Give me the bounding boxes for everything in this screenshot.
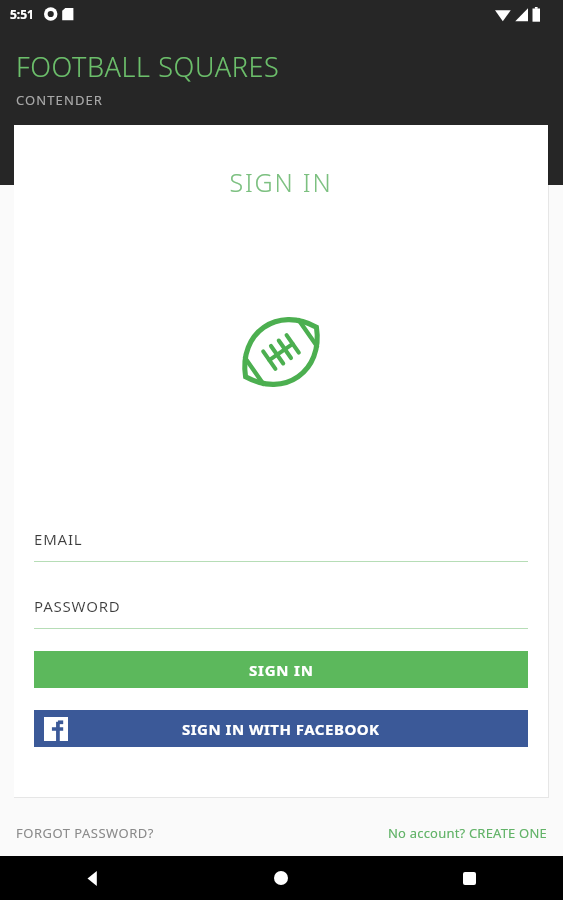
- staticText: PASSWORD: [34, 596, 121, 616]
- staticText: No account? CREATE ONE: [388, 824, 547, 842]
- button[interactable]: No account? CREATE ONE: [388, 820, 547, 846]
- button[interactable]: Recent apps: [375, 856, 563, 900]
- staticText: EMAIL: [34, 529, 83, 549]
- button[interactable]: Home: [187, 856, 375, 900]
- button[interactable]: SIGN IN WITH FACEBOOK: [34, 710, 528, 747]
- button[interactable]: FORGOT PASSWORD?: [16, 820, 154, 846]
- button[interactable]: Back: [0, 856, 187, 900]
- button[interactable]: PASSWORD: [34, 596, 528, 629]
- button[interactable]: SIGN IN: [34, 651, 528, 688]
- staticText: SIGN IN WITH FACEBOOK: [182, 719, 380, 739]
- staticText: CONTENDER: [16, 91, 104, 109]
- other: Football: [235, 309, 327, 395]
- staticText: 5:51: [10, 6, 34, 22]
- staticText: SIGN IN: [249, 660, 314, 680]
- staticText: FOOTBALL SQUARES: [16, 48, 280, 85]
- staticText: SIGN IN: [14, 165, 548, 199]
- staticText: FORGOT PASSWORD?: [16, 824, 154, 842]
- button[interactable]: EMAIL: [34, 529, 528, 562]
